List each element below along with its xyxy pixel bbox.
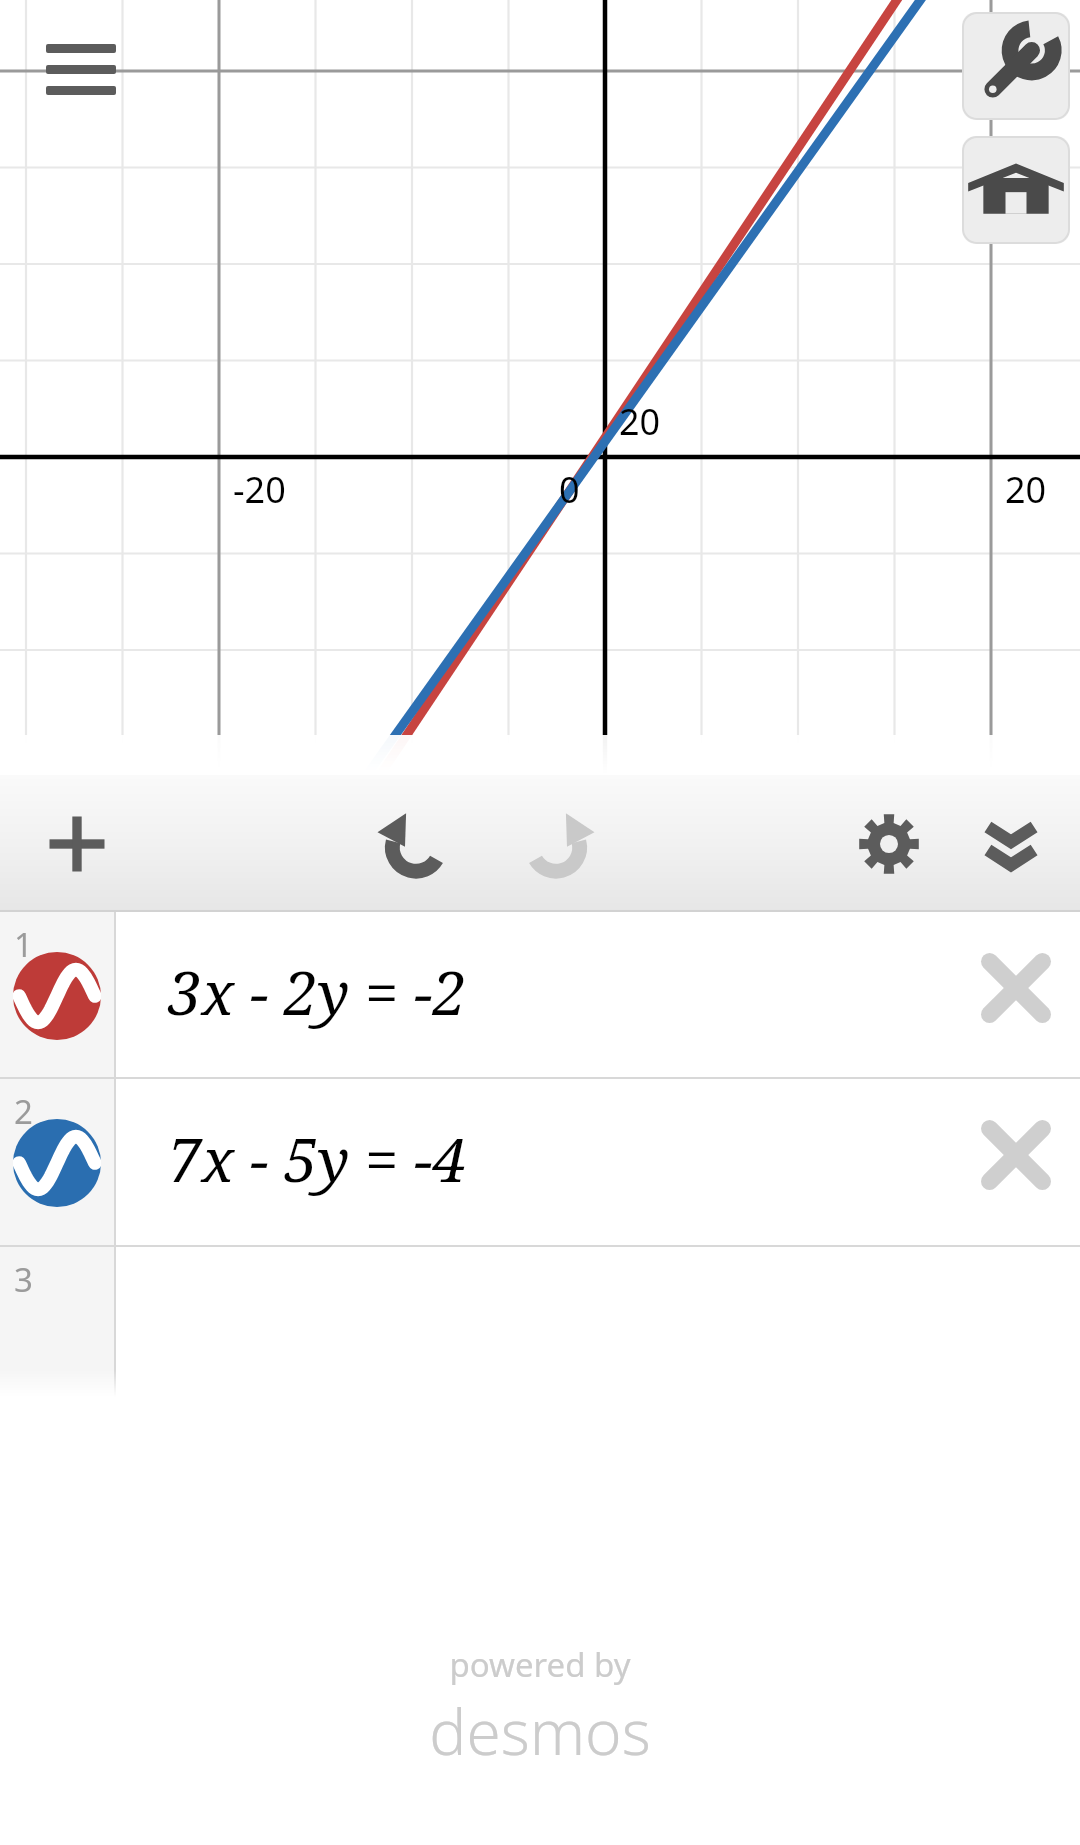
staticText: 20 (1005, 465, 1047, 514)
button[interactable]: 3 (0, 1247, 1080, 1397)
button[interactable]: Undo (361, 789, 471, 899)
button[interactable]: Add expression (22, 789, 132, 899)
staticText: 1 (14, 922, 33, 967)
button[interactable]: Delete expression (968, 1107, 1064, 1203)
button[interactable]: Toggle plot (12, 951, 102, 1041)
staticText: 7x − 5y = −4 (168, 1118, 467, 1200)
button[interactable]: Redo (501, 789, 611, 899)
staticText: 3x − 2y = −2 (168, 951, 467, 1033)
staticText: desmos (429, 1689, 651, 1773)
button[interactable]: Collapse (956, 789, 1066, 899)
button[interactable]: Delete expression (968, 940, 1064, 1036)
staticText: 20 (619, 397, 661, 446)
button[interactable]: Menu (26, 22, 136, 118)
staticText: powered by (449, 1642, 631, 1687)
staticText: 2 (14, 1089, 33, 1134)
staticText: -20 (233, 465, 286, 514)
button[interactable]: Toggle plot (12, 1118, 102, 1208)
button[interactable]: Settings (962, 12, 1070, 120)
button[interactable]: 1 (0, 912, 1080, 1079)
staticText: -20 (495, 823, 548, 872)
staticText: 3 (14, 1257, 33, 1302)
button[interactable]: Home (962, 136, 1070, 244)
button[interactable]: Graph settings (834, 789, 944, 899)
staticText: 0 (559, 465, 580, 514)
button[interactable]: 2 (0, 1079, 1080, 1247)
